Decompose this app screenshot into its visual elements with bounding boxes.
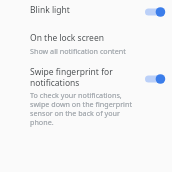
staticText: On the lock screen	[30, 32, 104, 44]
staticText: Show all notification content	[30, 46, 126, 56]
button[interactable]: Blink light	[0, 4, 172, 20]
button[interactable]: Blink light toggle	[145, 4, 167, 20]
staticText: Blink light	[30, 4, 70, 16]
staticText: To check your notifications, swipe down …	[30, 90, 140, 127]
button[interactable]: On the lock screen	[0, 32, 172, 56]
button[interactable]: Swipe fingerprint for notifications	[0, 66, 172, 127]
staticText: Swipe fingerprint for notifications	[30, 66, 140, 88]
button[interactable]: Swipe fingerprint for notifications togg…	[145, 71, 167, 87]
